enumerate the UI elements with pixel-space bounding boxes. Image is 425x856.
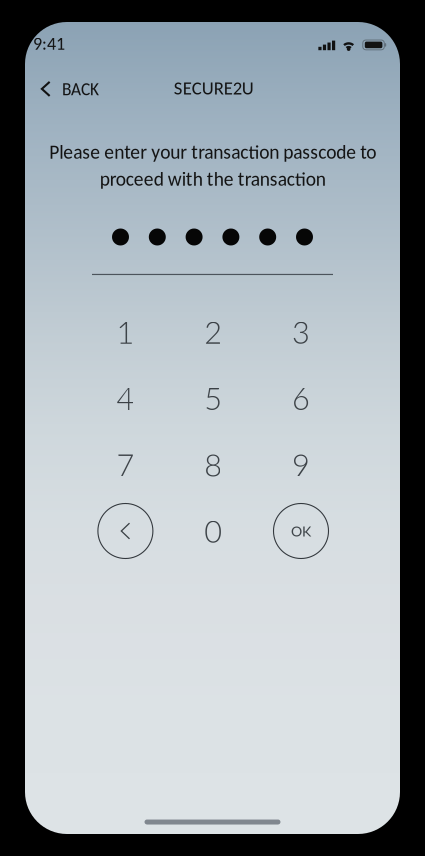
- button[interactable]: 6: [257, 365, 345, 431]
- staticText: Please enter your transaction passcode t…: [49, 140, 376, 191]
- staticText: 8: [204, 446, 222, 483]
- button[interactable]: 9: [257, 431, 345, 498]
- staticText: 9:41: [33, 32, 65, 54]
- staticText: 5: [204, 380, 222, 417]
- button[interactable]: 0: [169, 498, 257, 564]
- staticText: SECURE2U: [174, 77, 254, 100]
- staticText: 7: [116, 446, 134, 483]
- staticText: 4: [116, 380, 134, 417]
- button[interactable]: 7: [81, 431, 169, 498]
- button[interactable]: 1: [81, 299, 169, 365]
- staticText: 6: [292, 380, 310, 417]
- button[interactable]: 3: [257, 299, 345, 365]
- staticText: BACK: [62, 79, 99, 100]
- button[interactable]: 4: [81, 365, 169, 431]
- staticText: 0: [204, 513, 222, 549]
- button[interactable]: BACK: [26, 68, 113, 110]
- button[interactable]: 2: [169, 299, 257, 365]
- staticText: 3: [292, 313, 310, 350]
- staticText: 9: [292, 446, 310, 483]
- button[interactable]: Delete: [81, 498, 169, 564]
- button[interactable]: OK: [257, 498, 345, 564]
- staticText: OK: [291, 523, 311, 539]
- staticText: 1: [116, 313, 134, 350]
- button[interactable]: 5: [169, 365, 257, 431]
- button[interactable]: 8: [169, 431, 257, 498]
- staticText: 2: [204, 313, 222, 350]
